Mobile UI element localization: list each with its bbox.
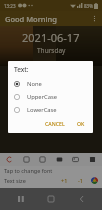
button[interactable]: Font A [20, 153, 33, 166]
staticText: LowerCase [27, 106, 57, 114]
button[interactable]: Good Morning [5, 14, 57, 24]
button[interactable]: More options [87, 11, 102, 26]
button[interactable]: Color [91, 177, 98, 184]
button[interactable]: +1 [59, 177, 70, 184]
button[interactable]: Layout [53, 153, 66, 166]
staticText: 83% [84, 3, 93, 9]
staticText: None [27, 80, 42, 88]
button[interactable]: Image [69, 153, 82, 166]
button[interactable]: CANCEL [42, 118, 68, 129]
staticText: Text size [4, 177, 26, 184]
staticText: Tap to change font [4, 167, 53, 174]
button[interactable]: -1 [76, 177, 85, 184]
staticText: Thursday [37, 46, 66, 55]
staticText: Good Morning [5, 14, 57, 24]
staticText: Text: [14, 65, 29, 74]
button[interactable]: Home [41, 189, 61, 209]
button[interactable]: UpperCase [8, 90, 93, 103]
button[interactable]: OK [74, 118, 88, 129]
staticText: -1 [78, 177, 83, 184]
staticText: 2021-06-17 [22, 30, 80, 45]
staticText: +1 [61, 177, 68, 184]
staticText: 13:23 [4, 3, 16, 9]
button[interactable]: None [8, 77, 93, 90]
button[interactable]: Recents [11, 189, 31, 209]
button[interactable]: Undo [3, 153, 16, 166]
button[interactable]: Format [36, 153, 49, 166]
button[interactable]: LowerCase [8, 103, 93, 116]
button[interactable]: Save [86, 153, 99, 166]
staticText: UpperCase [27, 93, 57, 101]
staticText: OK [77, 120, 85, 127]
staticText: CANCEL [45, 120, 65, 127]
button[interactable]: Back [72, 189, 92, 209]
